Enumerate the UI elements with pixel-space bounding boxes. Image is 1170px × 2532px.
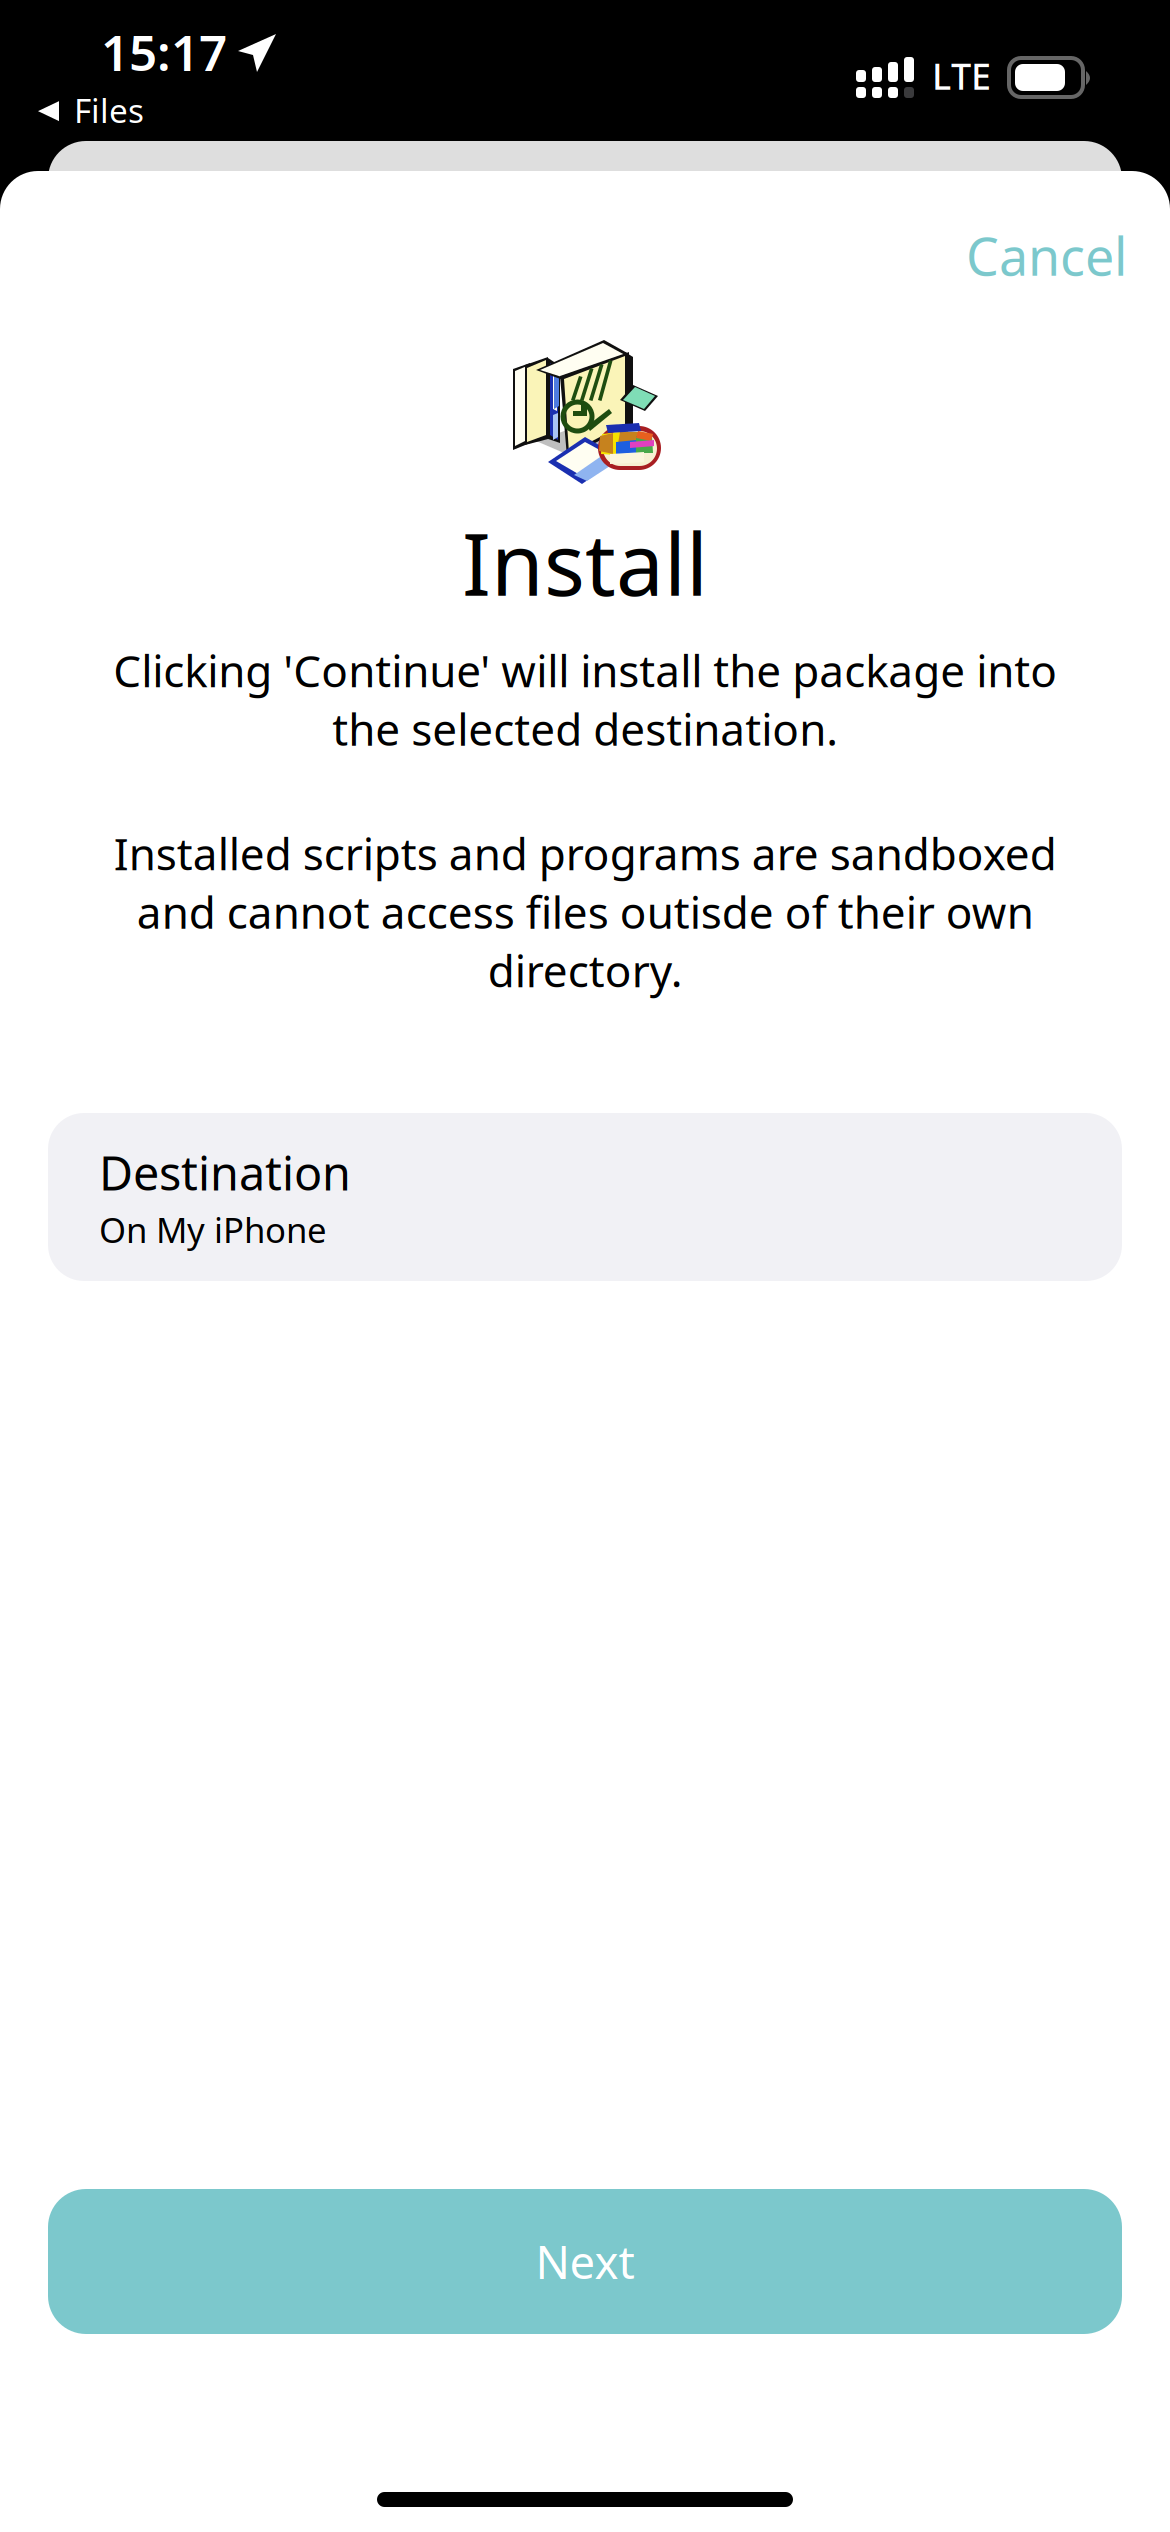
button[interactable]: Next [48, 2189, 1122, 2334]
staticText: On My iPhone [99, 1206, 327, 1252]
staticText: LTE [932, 52, 991, 100]
staticText: Clicking 'Continue' will install the pac… [113, 641, 1057, 758]
staticText: 15:17 [101, 19, 227, 84]
button[interactable]: Back to Files [28, 80, 154, 142]
button[interactable]: Destination [48, 1113, 1122, 1281]
button[interactable]: Cancel [940, 201, 1153, 310]
staticText: Install [462, 506, 708, 619]
staticText: Next [535, 2231, 634, 2292]
staticText: Files [74, 88, 144, 132]
staticText: Cancel [966, 221, 1127, 290]
staticText: Installed scripts and programs are sandb… [113, 824, 1056, 999]
staticText: Destination [99, 1141, 351, 1203]
